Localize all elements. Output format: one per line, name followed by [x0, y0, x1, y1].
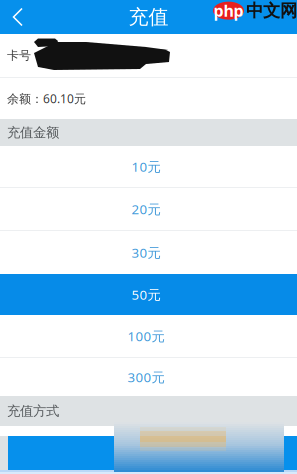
button[interactable]: 50元	[0, 274, 297, 315]
button[interactable]: 10元	[0, 146, 297, 187]
staticText: 30元	[131, 244, 160, 261]
staticText: 充值金额	[7, 124, 59, 141]
button[interactable]: 20元	[0, 188, 297, 230]
button[interactable]: 30元	[0, 231, 297, 274]
staticText: 100元	[127, 327, 164, 345]
button[interactable]: 300元	[0, 358, 297, 396]
button[interactable]: 100元	[0, 315, 297, 357]
staticText: 中文网	[246, 0, 297, 21]
staticText: 50元	[131, 286, 160, 303]
staticText: php	[213, 0, 243, 21]
staticText: 20元	[131, 200, 160, 218]
staticText: 卡号	[7, 48, 31, 63]
staticText: 10元	[131, 158, 160, 175]
staticText: 充值	[128, 5, 168, 29]
button[interactable]: Back	[0, 0, 36, 34]
button[interactable]	[0, 436, 297, 470]
staticText: 余额：60.10元	[7, 90, 86, 106]
staticText: 300元	[127, 368, 164, 386]
staticText: 充值方式	[7, 403, 59, 419]
